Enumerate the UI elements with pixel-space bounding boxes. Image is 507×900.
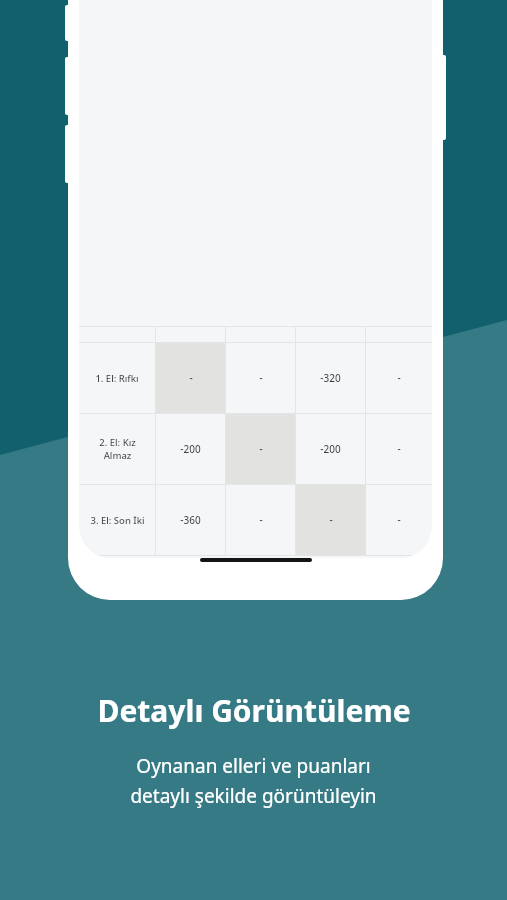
- staticText: -200: [180, 442, 201, 456]
- staticText: -: [259, 371, 263, 385]
- staticText: -360: [180, 513, 201, 527]
- staticText: -: [189, 371, 193, 385]
- staticText: -200: [320, 442, 341, 456]
- staticText: -: [259, 513, 263, 527]
- staticText: -: [397, 513, 401, 527]
- staticText: detaylı şekilde görüntüleyin: [130, 783, 377, 809]
- staticText: 3. El: Son İki: [90, 514, 145, 527]
- button[interactable]: 2. El: Kız Almaz: [79, 414, 432, 484]
- staticText: -: [397, 442, 401, 456]
- staticText: -: [259, 442, 263, 456]
- staticText: -320: [320, 371, 341, 385]
- staticText: Oynanan elleri ve puanları: [136, 753, 371, 779]
- staticText: 2. El: Kız Almaz: [99, 436, 136, 462]
- button[interactable]: 1. El: Rıfkı: [79, 343, 432, 413]
- staticText: 1. El: Rıfkı: [95, 372, 139, 385]
- staticText: Detaylı Görüntüleme: [97, 690, 411, 731]
- staticText: -: [397, 371, 401, 385]
- staticText: -: [329, 513, 333, 527]
- button[interactable]: 3. El: Son İki: [79, 485, 432, 555]
